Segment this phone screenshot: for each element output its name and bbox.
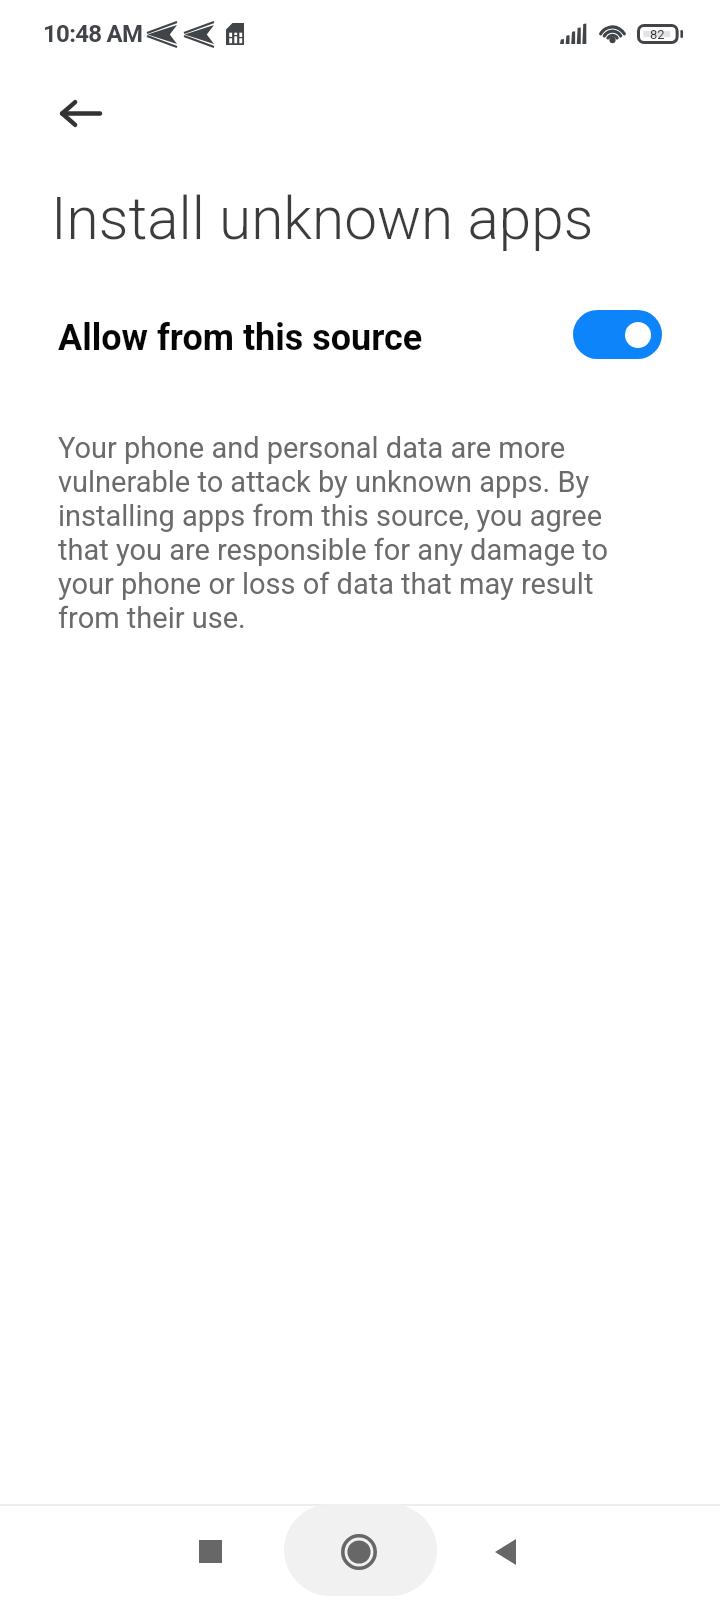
staticText: 10:48 AM — [43, 20, 143, 48]
button[interactable]: Navigate up — [52, 85, 108, 141]
button[interactable]: Allow from this source — [0, 302, 720, 374]
button[interactable]: Home — [323, 1516, 395, 1588]
button[interactable]: Back — [473, 1520, 537, 1584]
staticText: 82 — [650, 27, 665, 42]
staticText: Your phone and personal data are more vu… — [58, 431, 638, 635]
staticText: Install unknown apps — [51, 185, 594, 254]
button[interactable]: Recent apps — [178, 1519, 242, 1583]
staticText: Allow from this source — [58, 317, 423, 359]
